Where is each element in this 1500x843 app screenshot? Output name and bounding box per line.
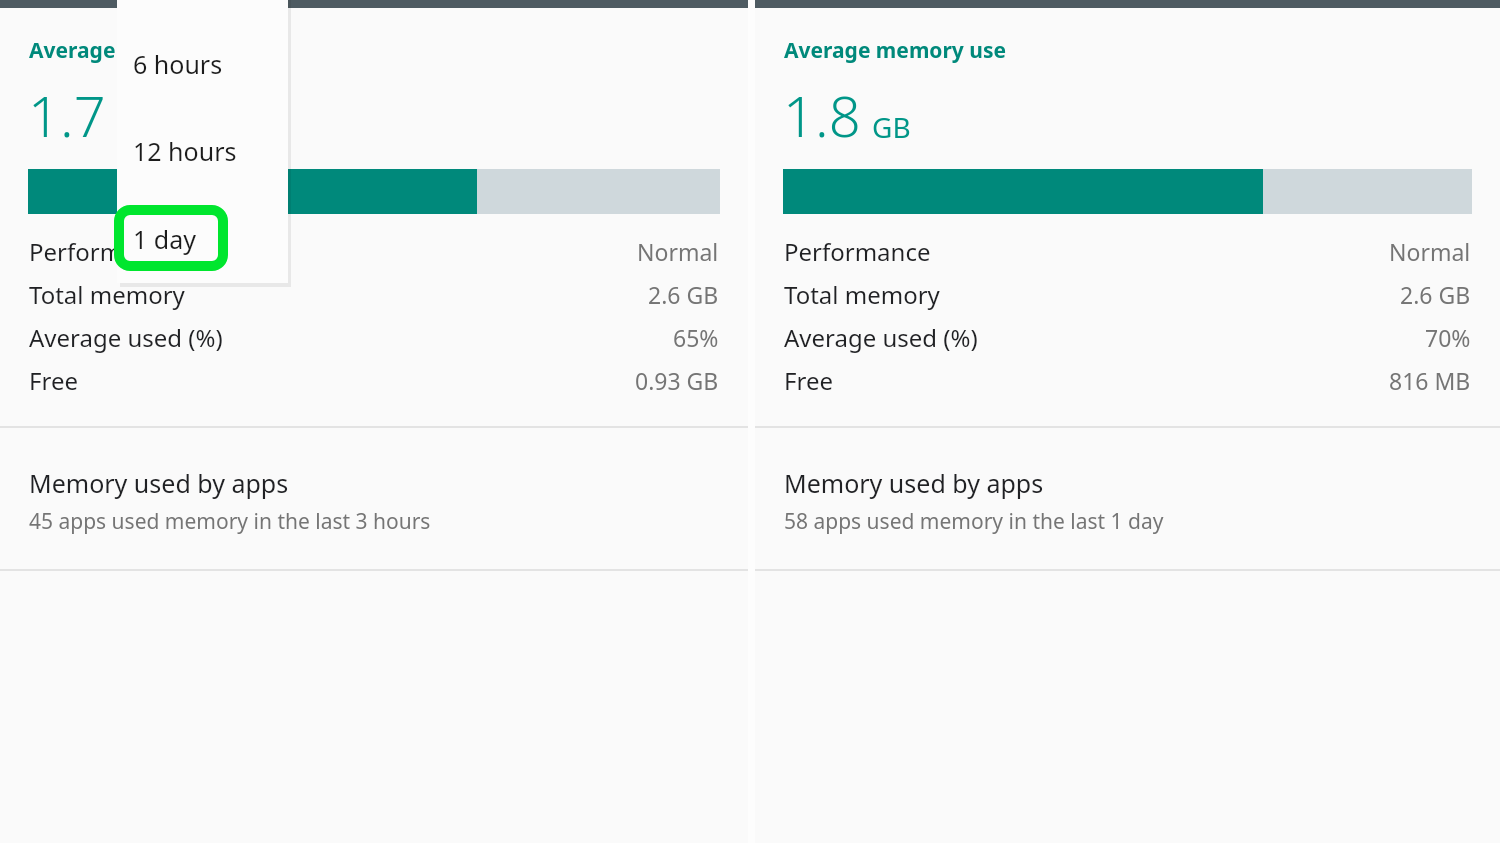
button[interactable]: Memory used by apps [755, 428, 1500, 569]
staticText: Average used (%) [29, 321, 223, 354]
other: Selected: 1 day [114, 205, 228, 271]
staticText: Memory used by apps [784, 466, 1044, 500]
button[interactable]: 6 hours [117, 47, 288, 81]
staticText: Total memory [784, 278, 940, 311]
staticText: Free [784, 364, 833, 397]
staticText: Performance [29, 235, 176, 268]
staticText: 1.8 [783, 77, 861, 153]
staticText: Average used (%) [784, 321, 978, 354]
staticText: GB [117, 108, 156, 146]
button[interactable]: Performance [0, 230, 748, 273]
button[interactable]: Total memory [0, 273, 748, 316]
staticText: 12 hours [133, 134, 237, 168]
staticText: 2.6 GB [1400, 279, 1471, 310]
staticText: 45 apps used memory in the last 3 hours [29, 507, 431, 536]
button[interactable]: Total memory [755, 273, 1500, 316]
staticText: 816 MB [1389, 365, 1471, 396]
staticText: 2.6 GB [648, 279, 719, 310]
staticText: 6 hours [133, 47, 223, 81]
button[interactable]: Average used (%) [755, 316, 1500, 359]
staticText: Average memory use [784, 36, 1007, 65]
staticText: Total memory [29, 278, 185, 311]
staticText: Normal [637, 236, 719, 267]
staticText: Free [29, 364, 78, 397]
button[interactable]: Free [755, 359, 1500, 402]
button[interactable]: Memory used by apps [0, 428, 748, 569]
staticText: 1.7 [28, 77, 106, 153]
staticText: 70% [1425, 322, 1471, 353]
button[interactable]: 1 day [117, 222, 288, 256]
button[interactable]: Average used (%) [0, 316, 748, 359]
button[interactable]: Performance [755, 230, 1500, 273]
staticText: GB [872, 108, 911, 146]
staticText: 0.93 GB [635, 365, 719, 396]
button[interactable]: 12 hours [117, 134, 288, 168]
button[interactable]: Free [0, 359, 748, 402]
staticText: Average memory use [29, 36, 252, 65]
staticText: Normal [1389, 236, 1471, 267]
staticText: 65% [673, 322, 719, 353]
staticText: Memory used by apps [29, 466, 289, 500]
staticText: 58 apps used memory in the last 1 day [784, 507, 1164, 536]
staticText: 1 day [133, 222, 196, 256]
staticText: Performance [784, 235, 931, 268]
